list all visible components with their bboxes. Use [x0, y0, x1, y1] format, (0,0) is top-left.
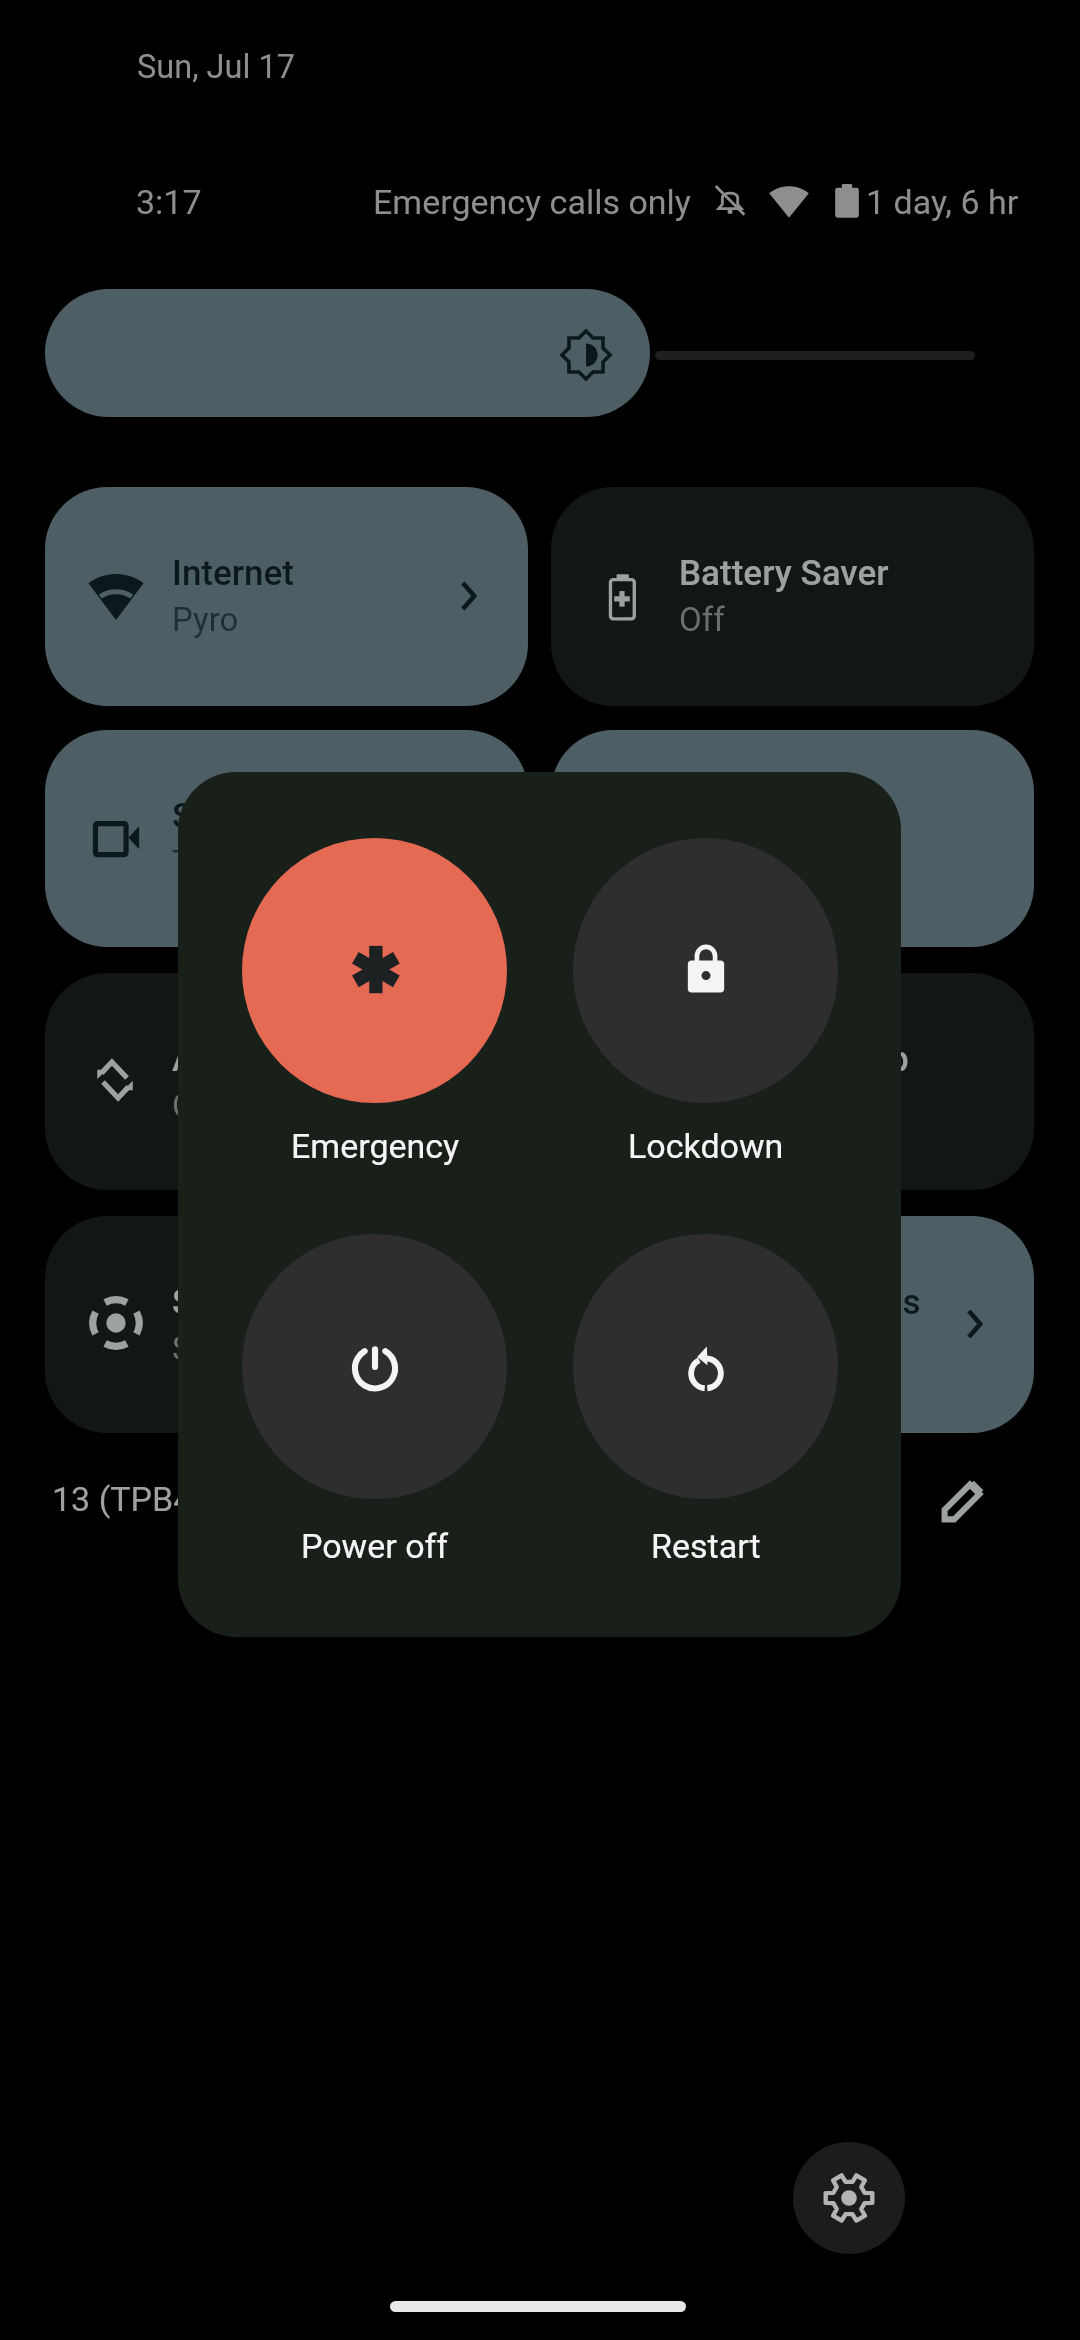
- button[interactable]: Emergency: [242, 838, 507, 1103]
- staticText: Device controls: [679, 1282, 921, 1323]
- staticText: Auto-rotate: [172, 1039, 350, 1080]
- button[interactable]: Brightness: [45, 289, 650, 417]
- staticText: Internet: [172, 553, 294, 594]
- staticText: Screen record: [172, 796, 390, 837]
- staticText: Restart: [651, 1526, 761, 1566]
- staticText: 3:17: [136, 182, 202, 222]
- staticText: Off: [679, 600, 725, 639]
- staticText: Lockdown: [628, 1126, 784, 1166]
- button[interactable]: Screen Saver: [45, 1216, 528, 1433]
- staticText: Do Not Disturb: [679, 1039, 909, 1080]
- staticText: Screensaver: [172, 1329, 353, 1368]
- staticText: 1 day, 6 hr: [866, 182, 1019, 222]
- button[interactable]: Settings: [793, 2142, 905, 2254]
- staticText: Battery Saver: [679, 553, 889, 594]
- staticText: Screen Saver: [172, 1282, 378, 1323]
- button[interactable]: Bluetooth, On: [551, 730, 1034, 947]
- button[interactable]: Screen record: [45, 730, 528, 947]
- staticText: Tap to start: [172, 843, 341, 882]
- staticText: On: [172, 1086, 213, 1125]
- staticText: Sun, Jul 17: [137, 48, 295, 86]
- button[interactable]: Restart: [573, 1234, 838, 1499]
- staticText: Off: [679, 1086, 725, 1125]
- button[interactable]: Do Not Disturb, Off: [551, 973, 1034, 1190]
- staticText: Power off: [301, 1526, 449, 1566]
- staticText: 13 (TPB4.220624.005): [52, 1479, 395, 1519]
- staticText: On: [679, 1329, 720, 1368]
- button[interactable]: Device controls, On: [551, 1216, 1034, 1433]
- staticText: Emergency calls only: [373, 182, 691, 222]
- button[interactable]: Lockdown: [573, 838, 838, 1103]
- button[interactable]: Power off: [242, 1234, 507, 1499]
- staticText: Emergency: [291, 1126, 460, 1166]
- button[interactable]: Edit tiles: [928, 1464, 1000, 1536]
- staticText: Pyro: [172, 600, 239, 639]
- button[interactable]: Battery Saver, Off: [551, 487, 1034, 706]
- button[interactable]: Auto-rotate, On: [45, 973, 528, 1190]
- button[interactable]: Internet, Pyro: [45, 487, 528, 706]
